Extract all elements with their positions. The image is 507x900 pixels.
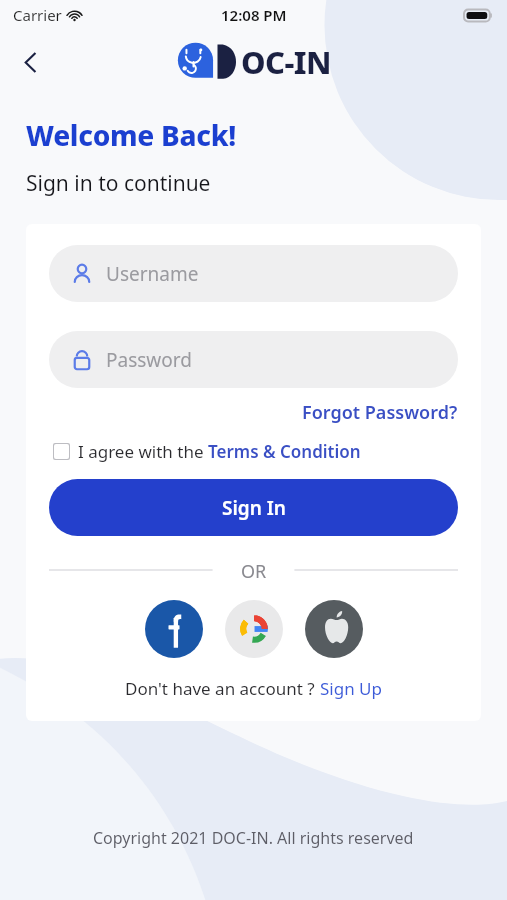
- button[interactable]: Forgot Password?: [302, 400, 458, 425]
- staticText: Sign In: [222, 495, 286, 521]
- staticText: Terms & Condition: [208, 440, 361, 463]
- staticText: Password: [106, 347, 192, 373]
- button[interactable]: Password: [49, 331, 458, 388]
- button[interactable]: Sign Up: [320, 677, 382, 700]
- button[interactable]: Sign in with Google: [225, 600, 283, 658]
- staticText: Username: [106, 261, 199, 287]
- staticText: Forgot Password?: [302, 400, 458, 425]
- button[interactable]: Sign in with Apple: [305, 600, 363, 658]
- staticText: Welcome Back!: [26, 116, 236, 154]
- button[interactable]: Back: [7, 39, 53, 85]
- button[interactable]: Username: [49, 245, 458, 302]
- button[interactable]: Agree to terms: [49, 439, 73, 463]
- staticText: 12:08 PM: [221, 5, 287, 25]
- button[interactable]: Sign in with Facebook: [145, 600, 203, 658]
- button[interactable]: Sign In: [49, 479, 458, 536]
- staticText: Don't have an account ?: [125, 677, 320, 700]
- staticText: OC-IN: [241, 41, 331, 83]
- staticText: Copyright 2021 DOC-IN. All rights reserv…: [93, 827, 414, 849]
- staticText: Sign Up: [320, 677, 382, 700]
- staticText: I agree with the: [78, 440, 208, 463]
- staticText: Sign in to continue: [26, 169, 211, 198]
- staticText: Carrier: [13, 5, 62, 25]
- staticText: OR: [241, 559, 267, 581]
- button[interactable]: Terms & Condition: [208, 440, 361, 463]
